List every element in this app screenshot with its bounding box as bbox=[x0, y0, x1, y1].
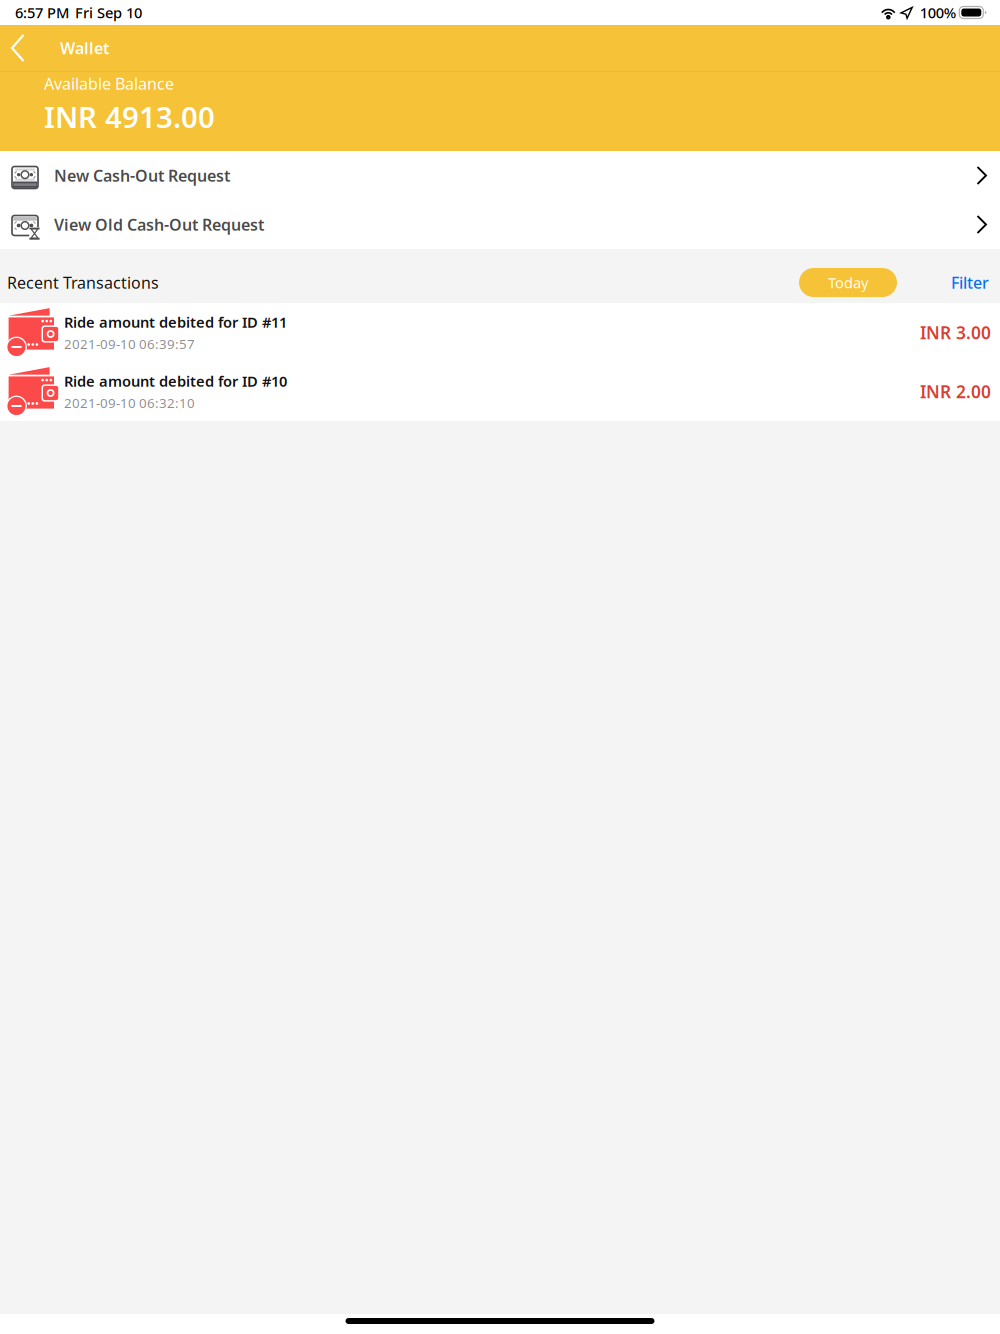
staticText: INR 4913.00 bbox=[44, 97, 215, 136]
button[interactable]: View Old Cash-Out Request bbox=[0, 200, 1000, 249]
button[interactable]: New Cash-Out Request bbox=[0, 151, 1000, 200]
staticText: Ride amount debited for ID #11 bbox=[64, 312, 287, 332]
button[interactable]: Back bbox=[5, 25, 30, 71]
button[interactable]: Filter bbox=[951, 268, 989, 297]
staticText: Ride amount debited for ID #10 bbox=[64, 371, 287, 391]
staticText: 2021-09-10 06:39:57 bbox=[64, 335, 195, 353]
staticText: 2021-09-10 06:32:10 bbox=[64, 394, 195, 412]
button[interactable]: Ride amount debited for ID #10 bbox=[0, 362, 1000, 421]
button[interactable]: Ride amount debited for ID #11 bbox=[0, 303, 1000, 362]
staticText: Recent Transactions bbox=[7, 272, 159, 293]
staticText: View Old Cash-Out Request bbox=[54, 214, 264, 235]
staticText: Available Balance bbox=[44, 73, 174, 94]
staticText: 100% bbox=[920, 3, 956, 22]
staticText: 6:57 PM bbox=[15, 3, 69, 22]
staticText: New Cash-Out Request bbox=[54, 165, 230, 186]
staticText: Filter bbox=[951, 272, 989, 293]
staticText: INR 2.00 bbox=[920, 380, 991, 403]
button[interactable]: Today bbox=[799, 268, 897, 297]
staticText: Fri Sep 10 bbox=[75, 3, 142, 22]
staticText: Wallet bbox=[60, 37, 109, 59]
staticText: INR 3.00 bbox=[920, 321, 991, 344]
staticText: Today bbox=[828, 273, 868, 292]
